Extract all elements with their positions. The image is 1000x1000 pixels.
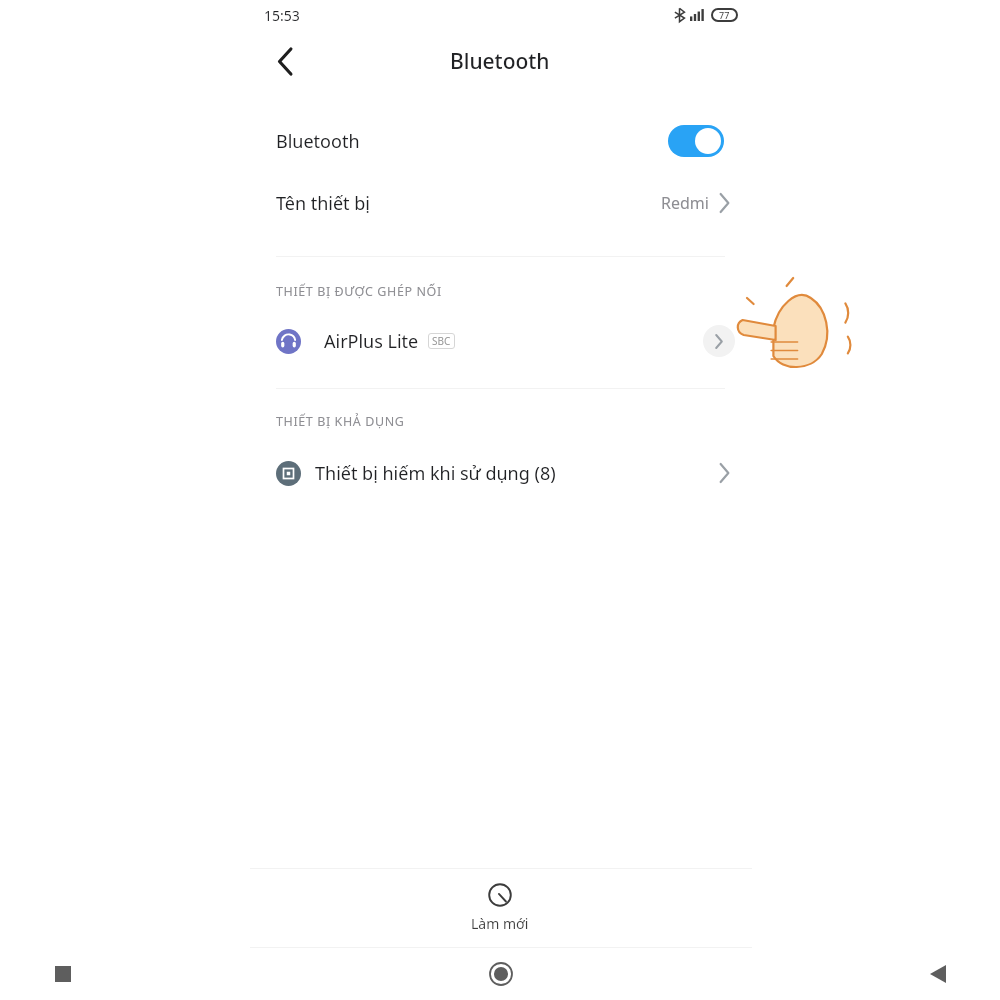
staticText: THIẾT BỊ ĐƯỢC GHÉP NỐI [276, 283, 442, 300]
staticText: 77 [719, 9, 730, 21]
staticText: SBC [432, 334, 451, 348]
staticText: Tên thiết bị [276, 191, 371, 216]
staticText: Bluetooth [276, 129, 360, 154]
staticText: Thiết bị hiếm khi sử dụng (8) [315, 461, 556, 486]
button[interactable]: Back [667, 948, 1000, 1000]
button[interactable]: AirPlus Lite [0, 314, 1000, 368]
staticText: THIẾT BỊ KHẢ DỤNG [276, 413, 405, 430]
button[interactable]: Back [258, 34, 312, 88]
staticText: Redmi [661, 192, 709, 214]
button[interactable]: Thiết bị hiếm khi sử dụng (8) [0, 446, 1000, 500]
button[interactable]: Tên thiết bị [0, 172, 1000, 234]
button[interactable]: Bluetooth [0, 110, 1000, 172]
button[interactable]: Recents [0, 948, 334, 1000]
button[interactable]: Device settings [703, 325, 735, 357]
staticText: Bluetooth [450, 47, 550, 76]
staticText: AirPlus Lite [324, 329, 419, 354]
staticText: 15:53 [264, 6, 300, 25]
button[interactable]: Làm mới [0, 869, 1000, 947]
staticText: Làm mới [471, 914, 529, 933]
button[interactable]: Home [334, 948, 667, 1000]
